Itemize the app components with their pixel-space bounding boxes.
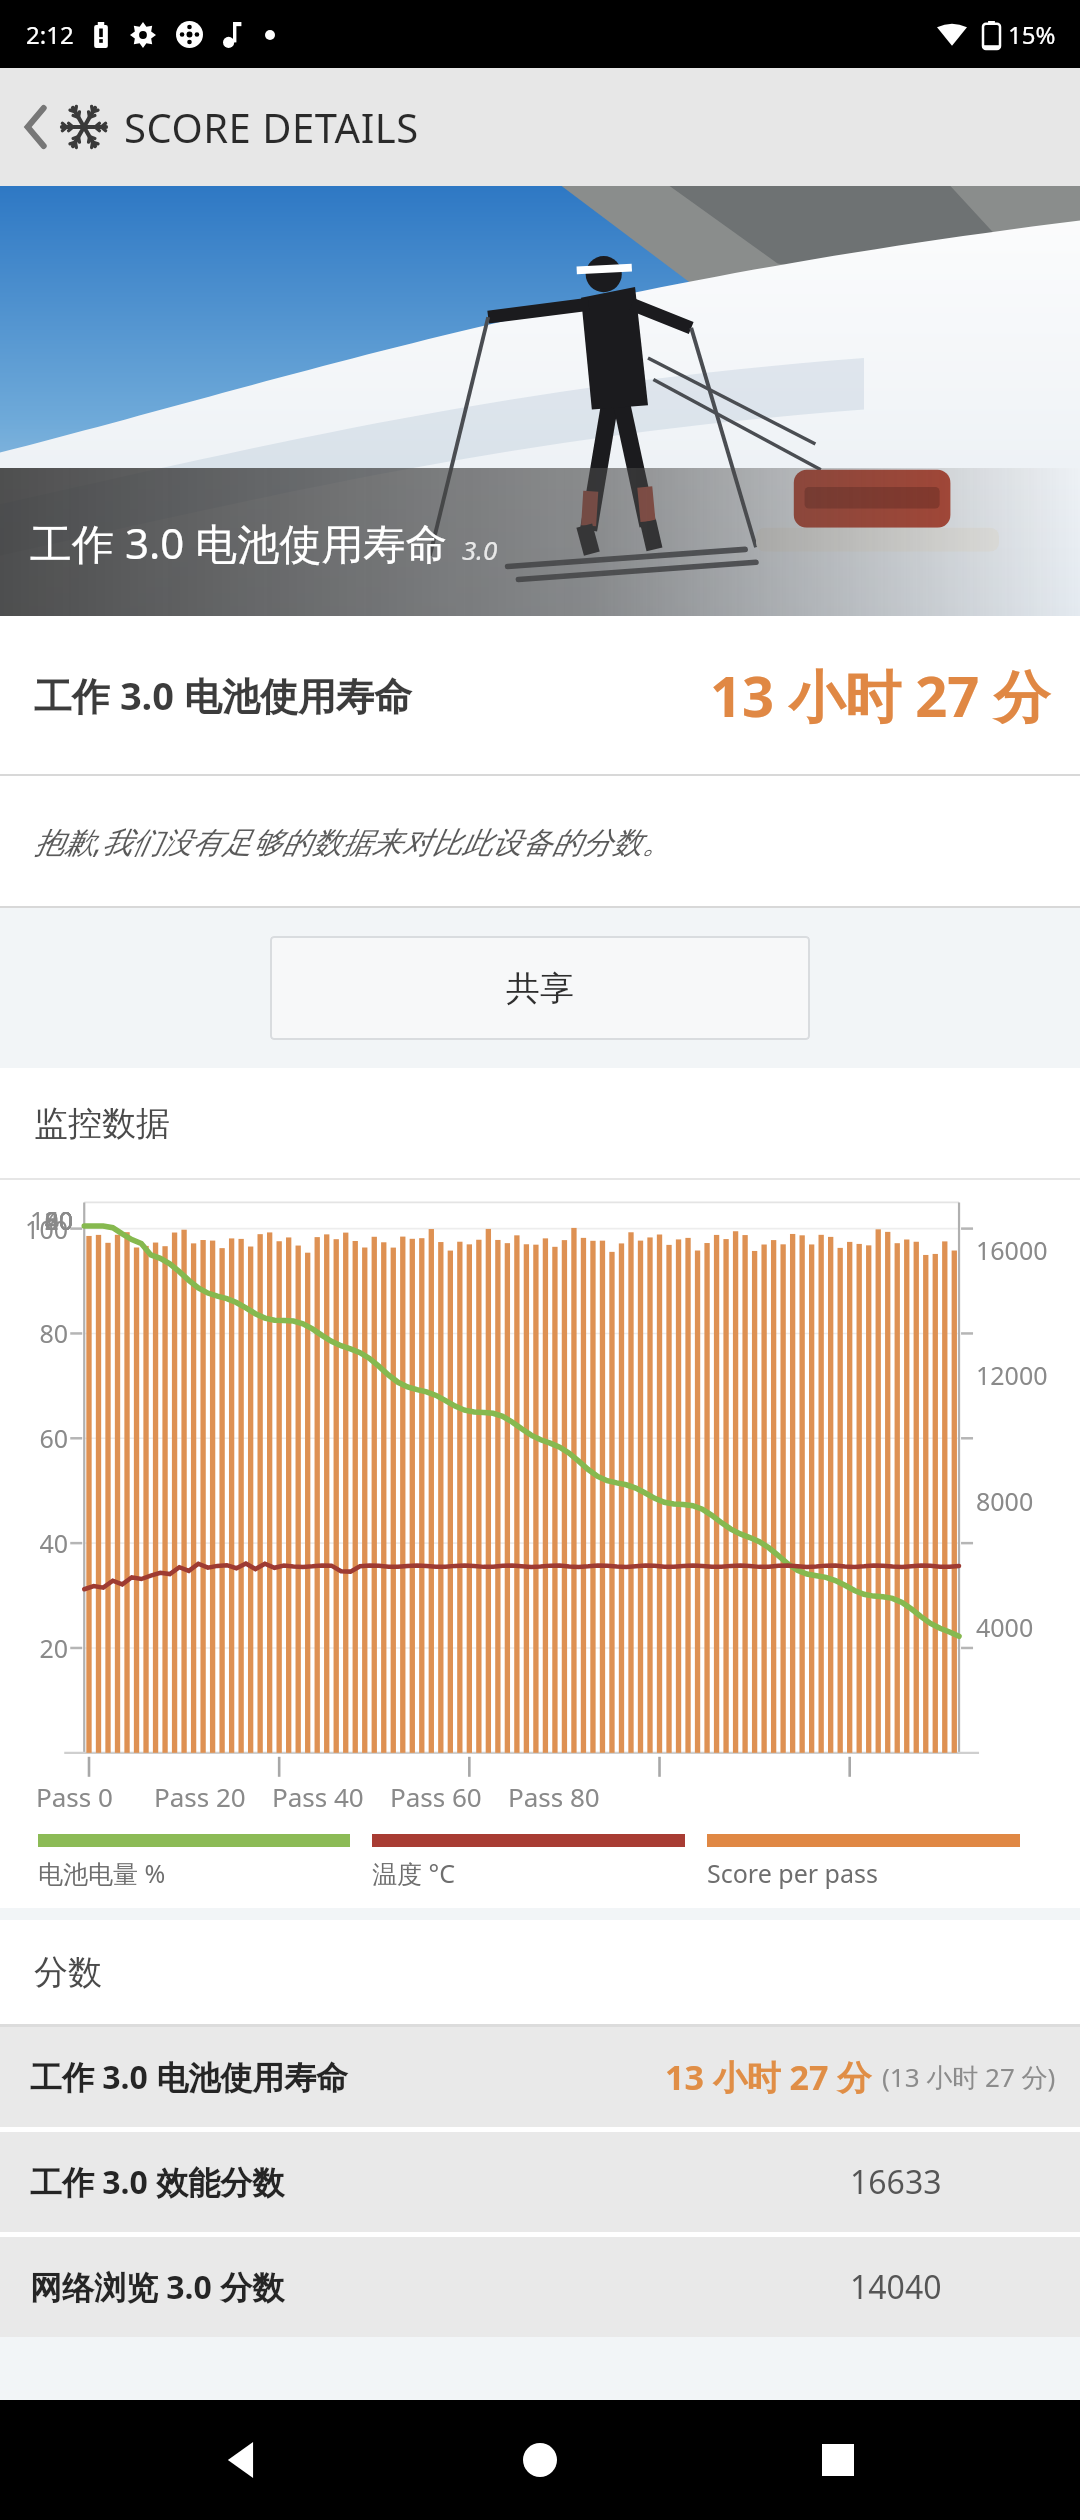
staticText: 14040 bbox=[850, 2265, 942, 2309]
staticText: Pass 60 bbox=[390, 1779, 482, 1814]
staticText: Score per pass bbox=[707, 1856, 878, 1890]
staticText: 20 bbox=[0, 1631, 68, 1665]
staticText: 分数 bbox=[34, 1951, 102, 1994]
button[interactable]: Recents bbox=[783, 2405, 893, 2515]
staticText: Pass 40 bbox=[272, 1779, 364, 1814]
staticText: 40 bbox=[0, 1526, 68, 1560]
staticText: 100 bbox=[0, 1212, 68, 1246]
staticText: 60 bbox=[0, 1421, 68, 1455]
staticText: 3.0 bbox=[462, 532, 498, 567]
staticText: 80 bbox=[0, 1316, 68, 1350]
staticText: 电池电量 % bbox=[38, 1856, 166, 1890]
staticText: 40 bbox=[0, 1203, 73, 1237]
staticText: 抱歉,我们没有足够的数据来对比此设备的分数。 bbox=[34, 821, 672, 862]
staticText: 20 bbox=[0, 1203, 73, 1237]
staticText: 8000 bbox=[976, 1484, 1072, 1518]
staticText: 工作 3.0 电池使用寿命 bbox=[34, 669, 412, 721]
staticText: 2:12 bbox=[26, 18, 74, 51]
staticText: 16633 bbox=[850, 2160, 942, 2204]
button[interactable]: 共享 bbox=[270, 936, 810, 1040]
staticText: 温度 °C bbox=[372, 1856, 456, 1890]
staticText: 12000 bbox=[976, 1358, 1072, 1392]
staticText: 网络浏览 3.0 分数 bbox=[30, 2265, 285, 2309]
staticText: 16000 bbox=[976, 1233, 1072, 1267]
staticText: 工作 3.0 效能分数 bbox=[30, 2160, 285, 2204]
staticText: Pass 0 bbox=[36, 1779, 113, 1814]
button[interactable]: Back bbox=[188, 2405, 298, 2515]
staticText: 15% bbox=[1008, 18, 1056, 51]
staticText: 监控数据 bbox=[34, 1102, 170, 1145]
button[interactable]: Back bbox=[12, 103, 60, 151]
staticText: SCORE DETAILS bbox=[124, 100, 419, 154]
button[interactable]: 工作 3.0 效能分数 bbox=[0, 2132, 1080, 2232]
button[interactable]: 网络浏览 3.0 分数 bbox=[0, 2237, 1080, 2337]
staticText: 13 小时 27 分 bbox=[665, 2054, 872, 2100]
staticText: 4000 bbox=[976, 1610, 1072, 1644]
staticText: 60 bbox=[0, 1203, 73, 1237]
staticText: Pass 80 bbox=[508, 1779, 600, 1814]
button[interactable]: 工作 3.0 电池使用寿命 bbox=[0, 616, 1080, 774]
button[interactable]: Home bbox=[485, 2405, 595, 2515]
staticText: 100 bbox=[0, 1203, 73, 1237]
button[interactable]: 工作 3.0 电池使用寿命 bbox=[0, 2027, 1080, 2127]
staticText: 13 小时 27 分 bbox=[710, 657, 1050, 733]
staticText: 80 bbox=[0, 1203, 73, 1237]
staticText: 工作 3.0 电池使用寿命 bbox=[30, 2055, 349, 2099]
staticText: (13 小时 27 分) bbox=[882, 2059, 1056, 2095]
staticText: Pass 20 bbox=[154, 1779, 246, 1814]
staticText: 共享 bbox=[506, 967, 574, 1010]
staticText: 工作 3.0 电池使用寿命 bbox=[30, 514, 448, 571]
